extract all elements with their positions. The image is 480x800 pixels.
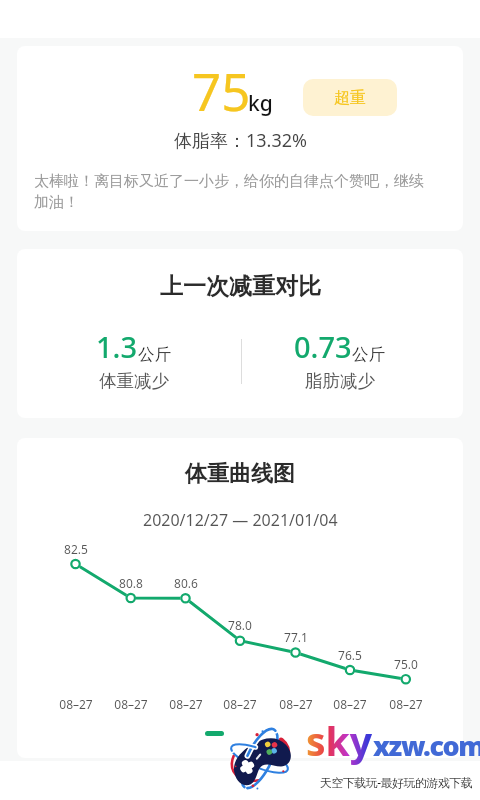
staticText: 80.6	[174, 575, 198, 591]
staticText: 08–27	[59, 696, 93, 712]
staticText: 80.8	[119, 575, 143, 591]
staticText: 0.73	[294, 327, 352, 366]
staticText: 75.0	[394, 656, 418, 672]
staticText: 75	[192, 56, 251, 125]
staticText: 08–27	[169, 696, 203, 712]
staticText: 体重减少	[99, 370, 169, 392]
button[interactable]: 0.73	[229, 327, 450, 392]
staticText: 太棒啦！离目标又近了一小步，给你的自律点个赞吧，继续加油！	[34, 172, 430, 211]
staticText: 82.5	[64, 541, 88, 557]
staticText: 公斤	[352, 344, 385, 365]
staticText: 体重曲线图	[185, 460, 295, 488]
staticText: 08–27	[223, 696, 257, 712]
staticText: sky	[306, 714, 373, 767]
staticText: 天空下载玩-最好玩的游戏下载	[320, 774, 473, 790]
staticText: 78.0	[228, 617, 252, 633]
staticText: 脂肪减少	[305, 370, 375, 392]
button[interactable]: 超重	[303, 79, 397, 116]
staticText: 08–27	[333, 696, 367, 712]
staticText: 76.5	[338, 647, 362, 663]
button[interactable]: sky xzw.com logo	[225, 724, 294, 793]
staticText: 上一次减重对比	[160, 272, 321, 301]
staticText: 2020/12/27 — 2021/01/04	[143, 509, 338, 531]
staticText: 体脂率：13.32%	[174, 128, 307, 153]
staticText: 08–27	[389, 696, 423, 712]
staticText: 公斤	[138, 344, 171, 365]
staticText: 1.3	[96, 327, 138, 366]
button[interactable]: 上一次减重对比	[17, 249, 463, 418]
button[interactable]: 75	[17, 46, 463, 231]
staticText: 超重	[334, 88, 366, 108]
button[interactable]: 体重曲线图	[17, 438, 463, 758]
staticText: xzw.com	[373, 727, 480, 764]
staticText: 77.1	[284, 629, 308, 645]
staticText: 08–27	[114, 696, 148, 712]
staticText: kg	[248, 89, 273, 118]
staticText: 08–27	[279, 696, 313, 712]
button[interactable]: 1.3	[23, 327, 244, 392]
